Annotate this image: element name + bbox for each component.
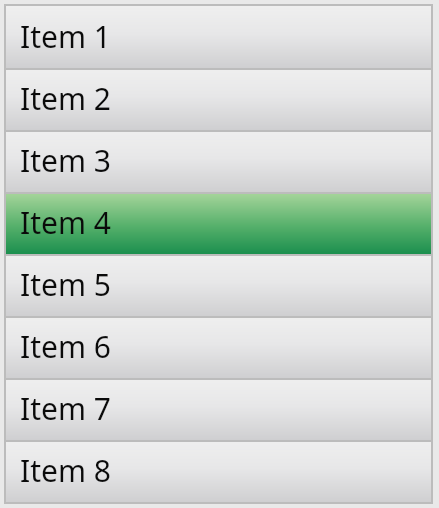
staticText: Item 5	[20, 264, 111, 305]
staticText: Item 2	[20, 78, 111, 119]
button[interactable]: Item 3	[6, 130, 431, 192]
button[interactable]: Item 8	[6, 440, 431, 502]
button[interactable]: Item 6	[6, 316, 431, 378]
staticText: Item 8	[20, 450, 111, 491]
staticText: Item 7	[20, 388, 111, 429]
staticText: Item 1	[20, 16, 111, 57]
button[interactable]: Item 5	[6, 254, 431, 316]
button[interactable]: Item 1	[6, 6, 431, 68]
staticText: Item 6	[20, 326, 111, 367]
staticText: Item 3	[20, 140, 111, 181]
staticText: Item 4	[20, 202, 111, 243]
button[interactable]: Item 4	[6, 192, 431, 254]
button[interactable]: Item 7	[6, 378, 431, 440]
button[interactable]: Item 2	[6, 68, 431, 130]
